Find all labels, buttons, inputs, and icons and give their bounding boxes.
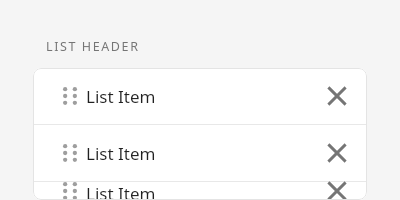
button[interactable]: Reorder item bbox=[33, 125, 367, 181]
staticText: LIST HEADER bbox=[46, 38, 140, 55]
staticText: List Item bbox=[86, 85, 156, 108]
button[interactable]: Remove List Item bbox=[320, 182, 354, 200]
button[interactable]: Reorder item bbox=[55, 81, 85, 111]
button[interactable]: Reorder item bbox=[33, 68, 367, 124]
button[interactable]: Remove List Item bbox=[320, 136, 354, 170]
button[interactable]: Reorder item bbox=[33, 182, 367, 200]
button[interactable]: Remove List Item bbox=[320, 79, 354, 113]
button[interactable]: Reorder item bbox=[55, 182, 85, 200]
button[interactable]: Reorder item bbox=[55, 138, 85, 168]
staticText: List Item bbox=[86, 182, 156, 200]
staticText: List Item bbox=[86, 142, 156, 165]
